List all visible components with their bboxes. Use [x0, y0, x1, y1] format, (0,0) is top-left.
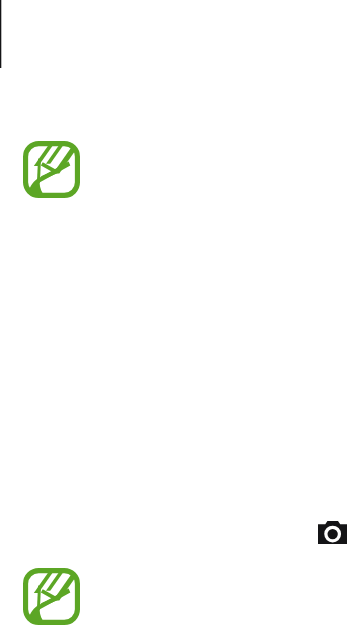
button[interactable]: Samsung Notes	[23, 141, 80, 198]
button[interactable]: Camera	[318, 521, 347, 544]
button[interactable]: Samsung Notes	[23, 568, 80, 625]
